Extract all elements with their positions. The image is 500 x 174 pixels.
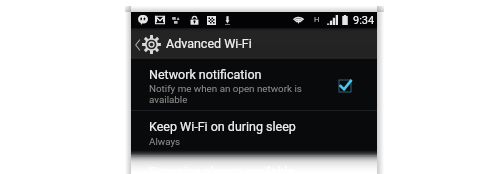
staticText: 9:34: [353, 14, 375, 27]
button[interactable]: Network notification: [131, 59, 377, 110]
button[interactable]: Navigate up: [131, 28, 377, 59]
staticText: Always: [149, 136, 181, 147]
staticText: Scanning always available: [149, 164, 295, 174]
other: Navigate up: [135, 40, 140, 50]
staticText: Keep Wi-Fi on during sleep: [149, 119, 296, 134]
staticText: Network notification: [149, 67, 262, 82]
button[interactable]: Scanning always available: [131, 156, 377, 174]
staticText: Notify me when an open network is availa…: [149, 83, 302, 105]
staticText: Advanced Wi-Fi: [166, 36, 252, 51]
button[interactable]: Keep Wi-Fi on during sleep: [131, 111, 377, 155]
button[interactable]: Network notification, enabled: [331, 73, 355, 97]
staticText: H: [314, 15, 320, 24]
